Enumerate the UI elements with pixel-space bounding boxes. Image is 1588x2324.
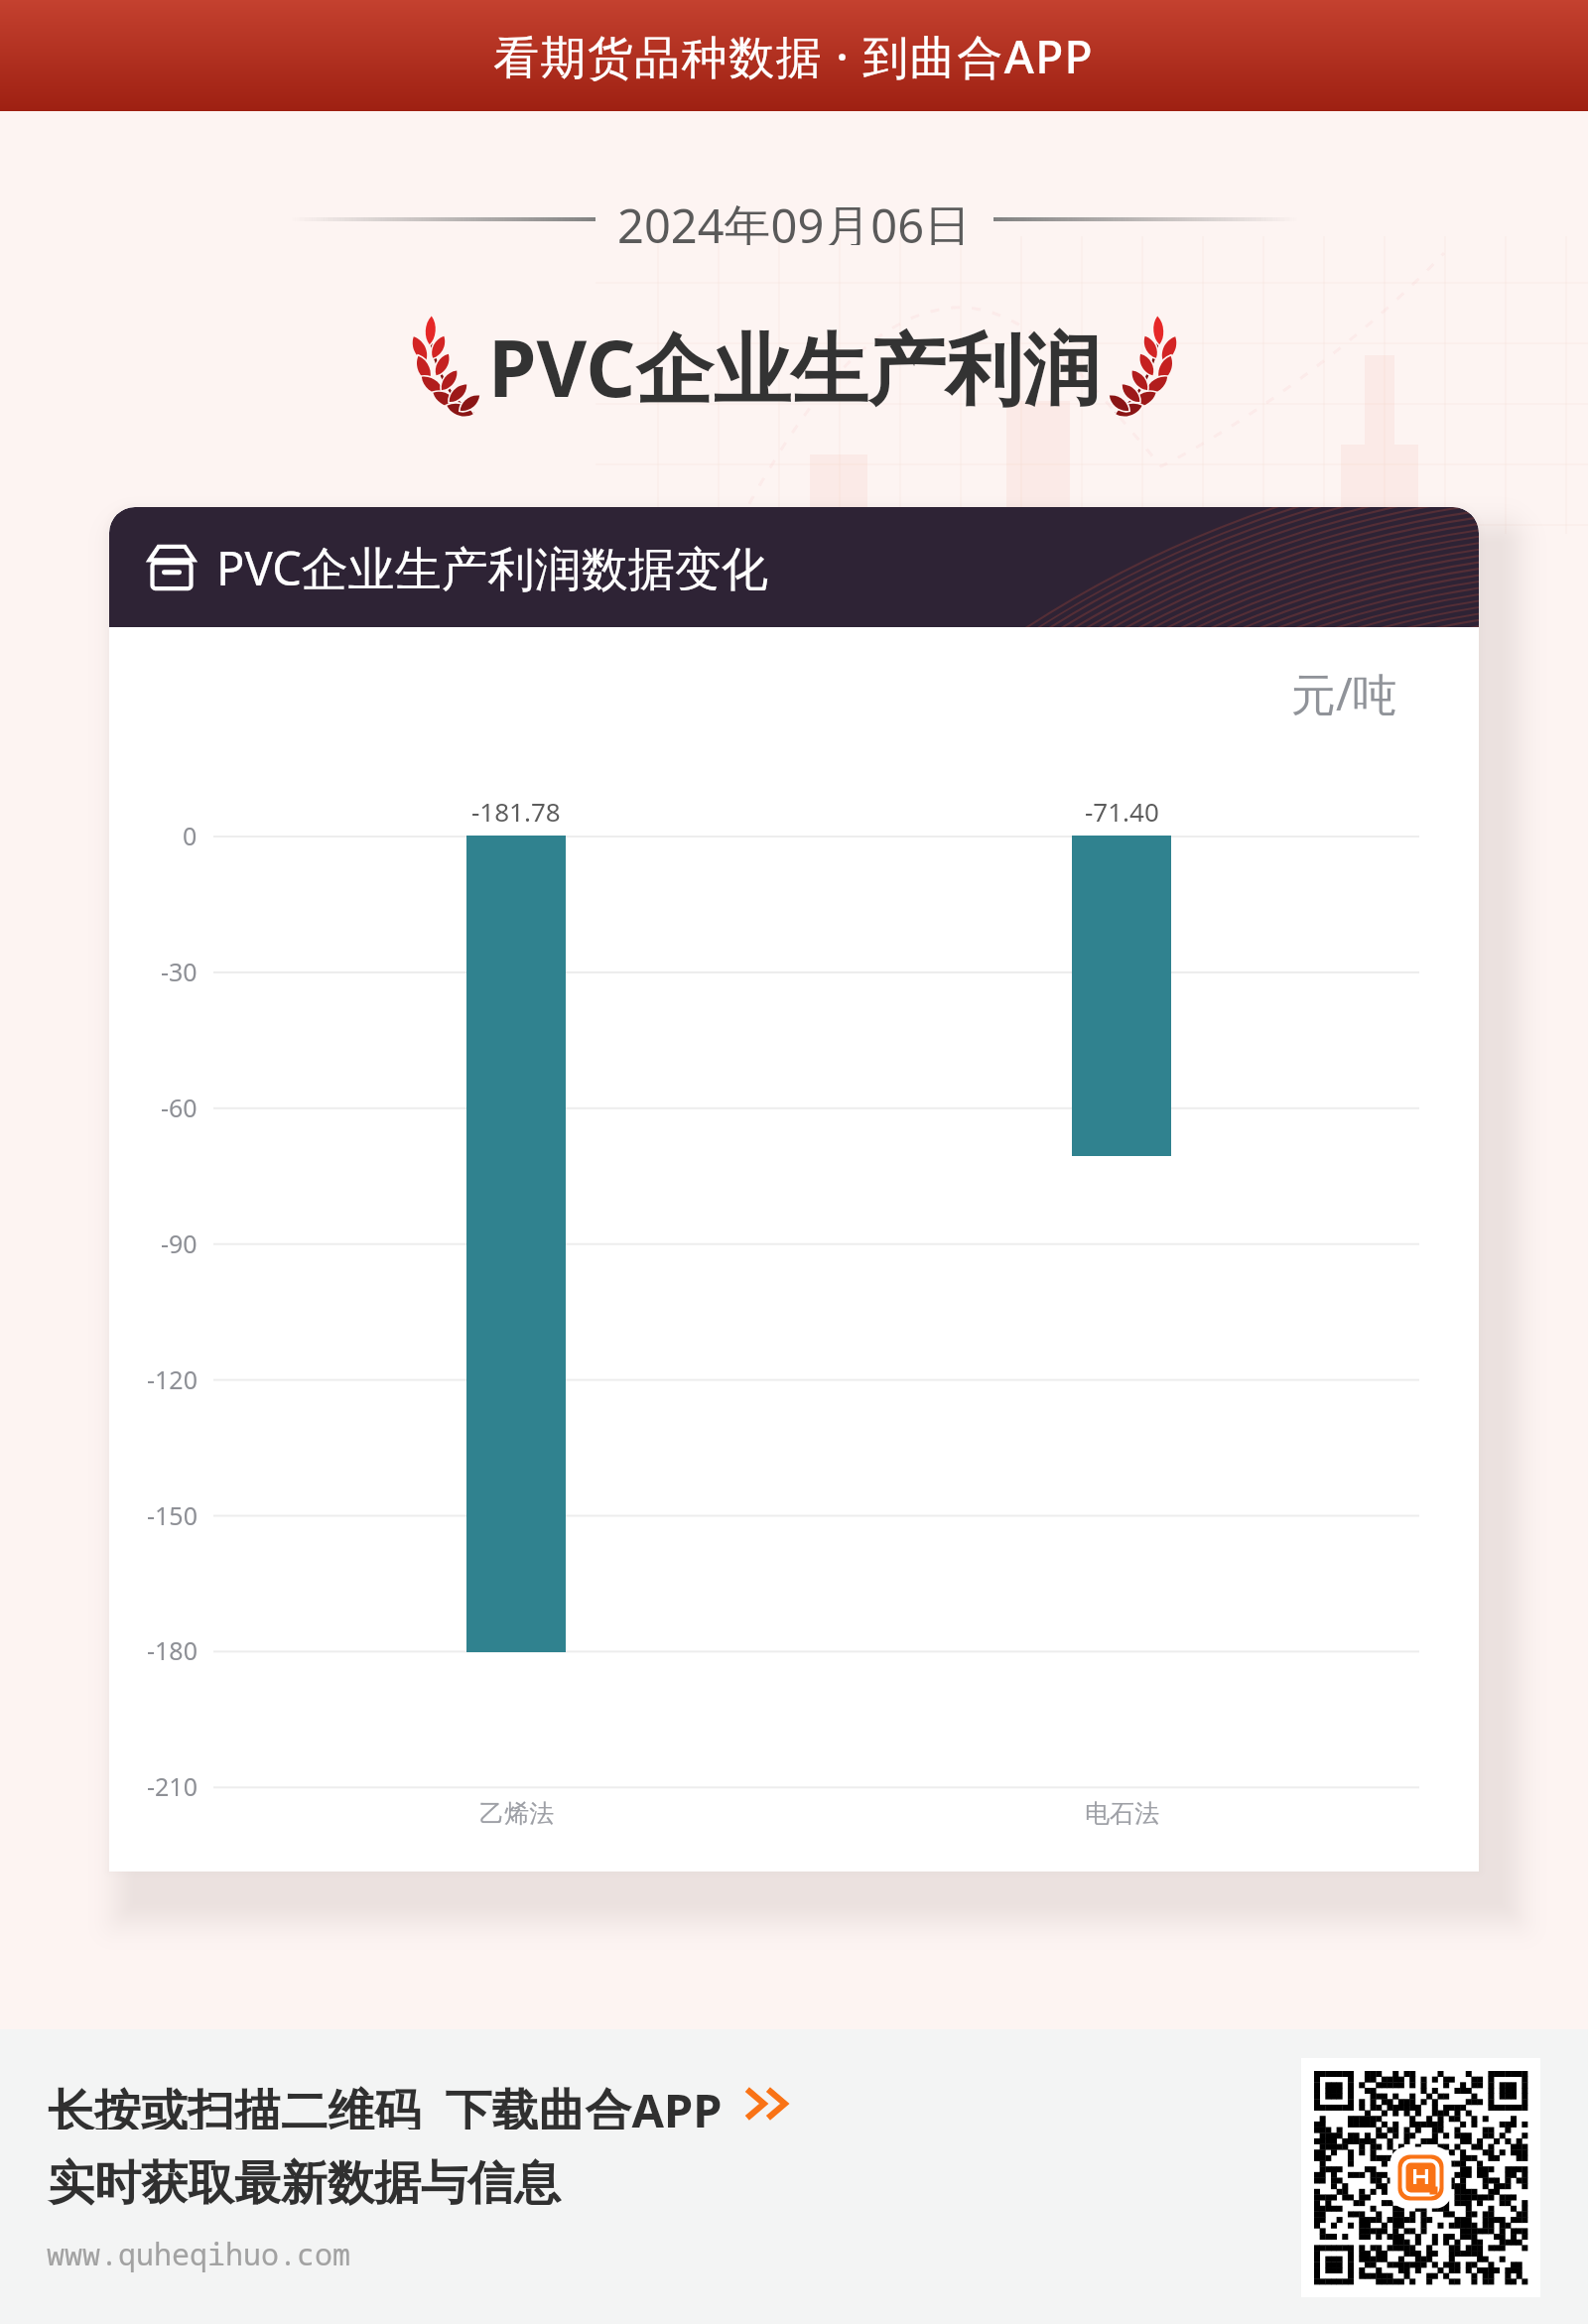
staticText: -181.78 [471, 794, 561, 829]
staticText: -120 [147, 1362, 198, 1396]
button[interactable]: 长按或扫描二维码 下载曲合APP [48, 2078, 790, 2130]
staticText: 实时获取最新数据与信息 [48, 2154, 561, 2213]
staticText: -150 [147, 1498, 198, 1532]
staticText: -210 [147, 1769, 198, 1803]
button[interactable]: 看期货品种数据 · 到曲合APP [0, 0, 1588, 111]
staticText: -90 [161, 1227, 198, 1260]
staticText: PVC企业生产利润 [488, 315, 1101, 421]
staticText: 2024年09月06日 [617, 194, 972, 245]
other: Open download page [742, 2084, 790, 2124]
staticText: 电石法 [1085, 1798, 1159, 1829]
staticText: -180 [147, 1633, 198, 1667]
staticText: 0 [183, 819, 198, 852]
staticText: 长按或扫描二维码 下载曲合APP [48, 2078, 723, 2130]
staticText: www.quheqihuo.com [47, 2234, 350, 2274]
staticText: 元/吨 [1291, 663, 1397, 723]
staticText: -60 [161, 1091, 198, 1124]
staticText: PVC企业生产利润数据变化 [216, 536, 768, 599]
button[interactable]: QR code, download app [1301, 2058, 1540, 2297]
staticText: 看期货品种数据 · 到曲合APP [493, 25, 1095, 87]
staticText: 乙烯法 [479, 1798, 554, 1829]
staticText: -71.40 [1085, 794, 1159, 829]
staticText: -30 [161, 955, 198, 988]
button[interactable]: PVC企业生产利润数据变化 [109, 507, 1479, 1872]
